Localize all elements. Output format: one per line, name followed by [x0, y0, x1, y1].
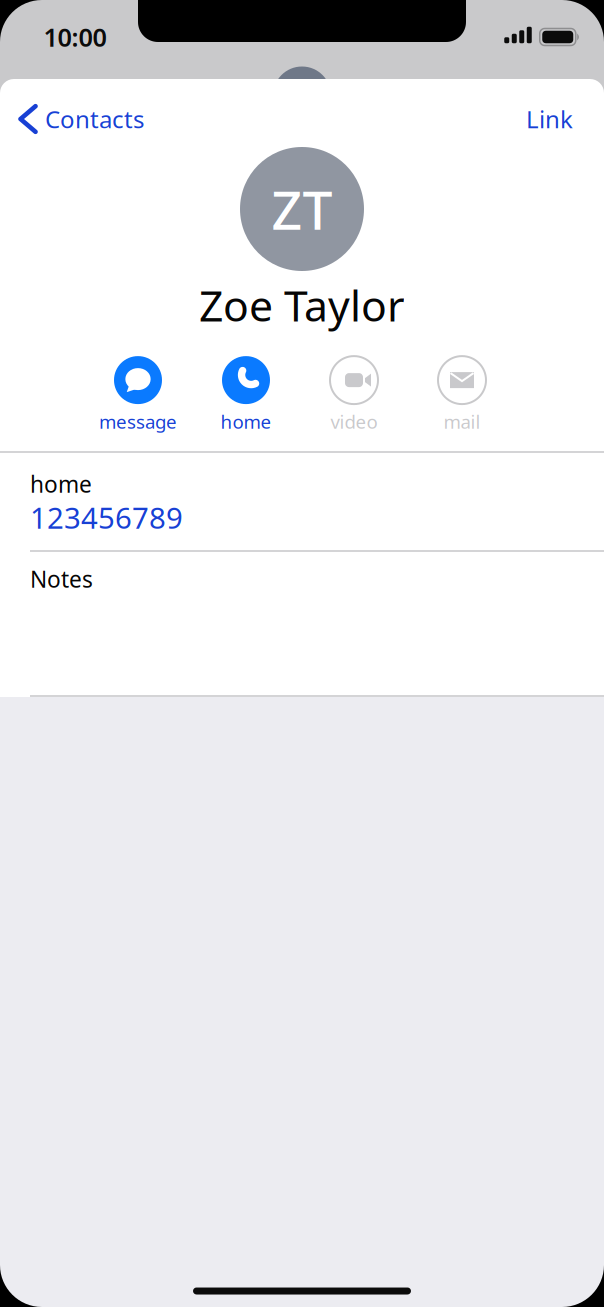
button[interactable]: home: [220, 356, 271, 434]
staticText: Contacts: [45, 103, 144, 135]
button[interactable]: Contacts: [18, 103, 144, 135]
staticText: 10:00: [43, 20, 106, 54]
button[interactable]: message: [99, 356, 177, 434]
staticText: ZT: [271, 174, 332, 244]
staticText: home: [220, 409, 271, 434]
staticText: Zoe Taylor: [199, 277, 405, 333]
staticText: Notes: [30, 564, 93, 594]
staticText: video: [330, 409, 377, 434]
button[interactable]: mail: [438, 356, 486, 434]
staticText: Link: [526, 103, 573, 135]
staticText: 123456789: [30, 498, 183, 537]
staticText: mail: [443, 409, 480, 434]
button[interactable]: home: [0, 452, 604, 550]
button[interactable]: video: [330, 356, 378, 434]
staticText: home: [30, 469, 92, 499]
button[interactable]: Link: [526, 103, 573, 135]
staticText: message: [99, 409, 177, 434]
